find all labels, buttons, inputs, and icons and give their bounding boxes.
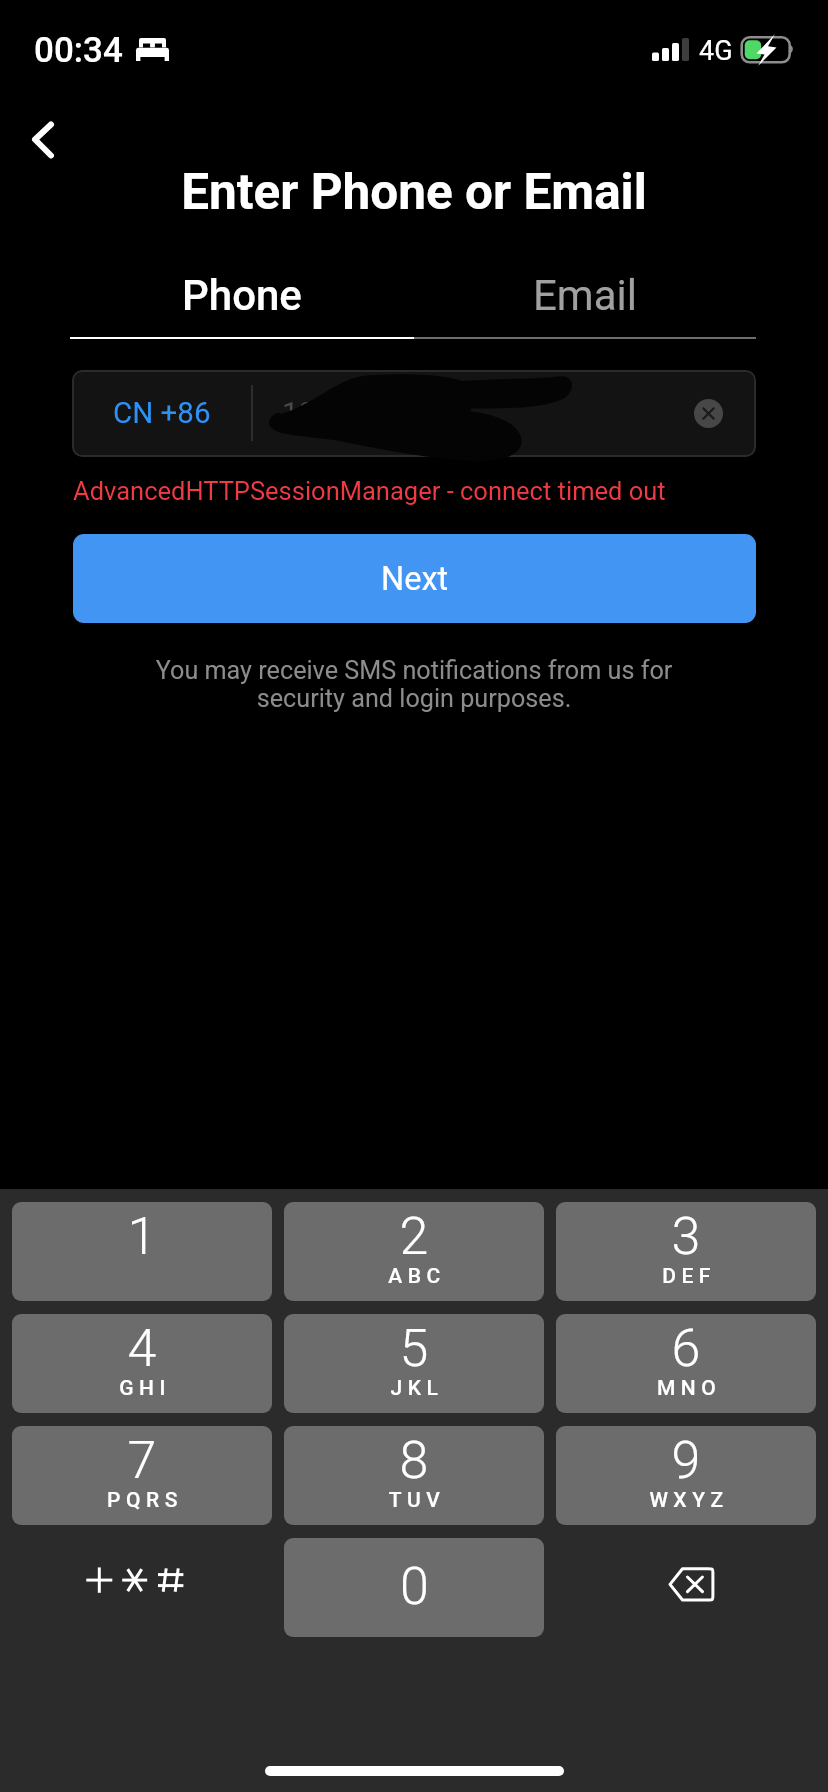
button[interactable]: 3 <box>556 1202 816 1301</box>
staticText: AdvancedHTTPSessionManager - connect tim… <box>73 476 666 506</box>
button[interactable]: CN +86 <box>72 370 756 457</box>
staticText: GHI <box>15 1376 272 1401</box>
button[interactable]: Next <box>73 534 756 623</box>
staticText: CN +86 <box>113 396 211 431</box>
button[interactable]: 0 <box>284 1538 544 1637</box>
staticText: 9 <box>556 1430 816 1491</box>
button[interactable]: 1 <box>12 1202 272 1301</box>
staticText: 1 <box>12 1206 272 1267</box>
button[interactable]: 6 <box>556 1314 816 1413</box>
button[interactable]: Plus star hash <box>12 1538 272 1637</box>
staticText: 00:34 <box>34 30 123 71</box>
button[interactable]: Backspace <box>556 1538 816 1637</box>
staticText: WXYZ <box>559 1488 816 1513</box>
staticText: 4G <box>699 35 733 67</box>
staticText: 2 <box>284 1206 544 1267</box>
staticText: 5 <box>284 1318 544 1379</box>
staticText: Phone <box>182 271 302 320</box>
button[interactable]: 7 <box>12 1426 272 1525</box>
button[interactable]: 9 <box>556 1426 816 1525</box>
button[interactable]: Phone <box>70 262 414 337</box>
staticText: 0 <box>400 1556 429 1617</box>
staticText: JKL <box>287 1376 544 1401</box>
staticText: MNO <box>559 1376 816 1401</box>
staticText: 4 <box>12 1318 272 1379</box>
staticText: You may receive SMS notifications from u… <box>134 656 694 713</box>
staticText: 8 <box>284 1430 544 1491</box>
staticText: 6 <box>556 1318 816 1379</box>
button[interactable]: 2 <box>284 1202 544 1301</box>
staticText: 7 <box>12 1430 272 1491</box>
staticText: ABC <box>287 1264 544 1289</box>
button[interactable]: Back <box>4 104 76 176</box>
staticText: PQRS <box>15 1488 272 1513</box>
button[interactable]: 8 <box>284 1426 544 1525</box>
staticText: Email <box>533 271 637 320</box>
staticText: TUV <box>287 1488 544 1513</box>
staticText: 3 <box>556 1206 816 1267</box>
button[interactable]: Email <box>414 262 756 337</box>
button[interactable]: 4 <box>12 1314 272 1413</box>
staticText: DEF <box>559 1264 816 1289</box>
staticText: 18210470313 <box>282 396 465 431</box>
staticText: Enter Phone or Email <box>0 163 828 221</box>
button[interactable]: Clear text <box>694 399 723 428</box>
staticText: Next <box>381 560 449 598</box>
button[interactable]: 5 <box>284 1314 544 1413</box>
